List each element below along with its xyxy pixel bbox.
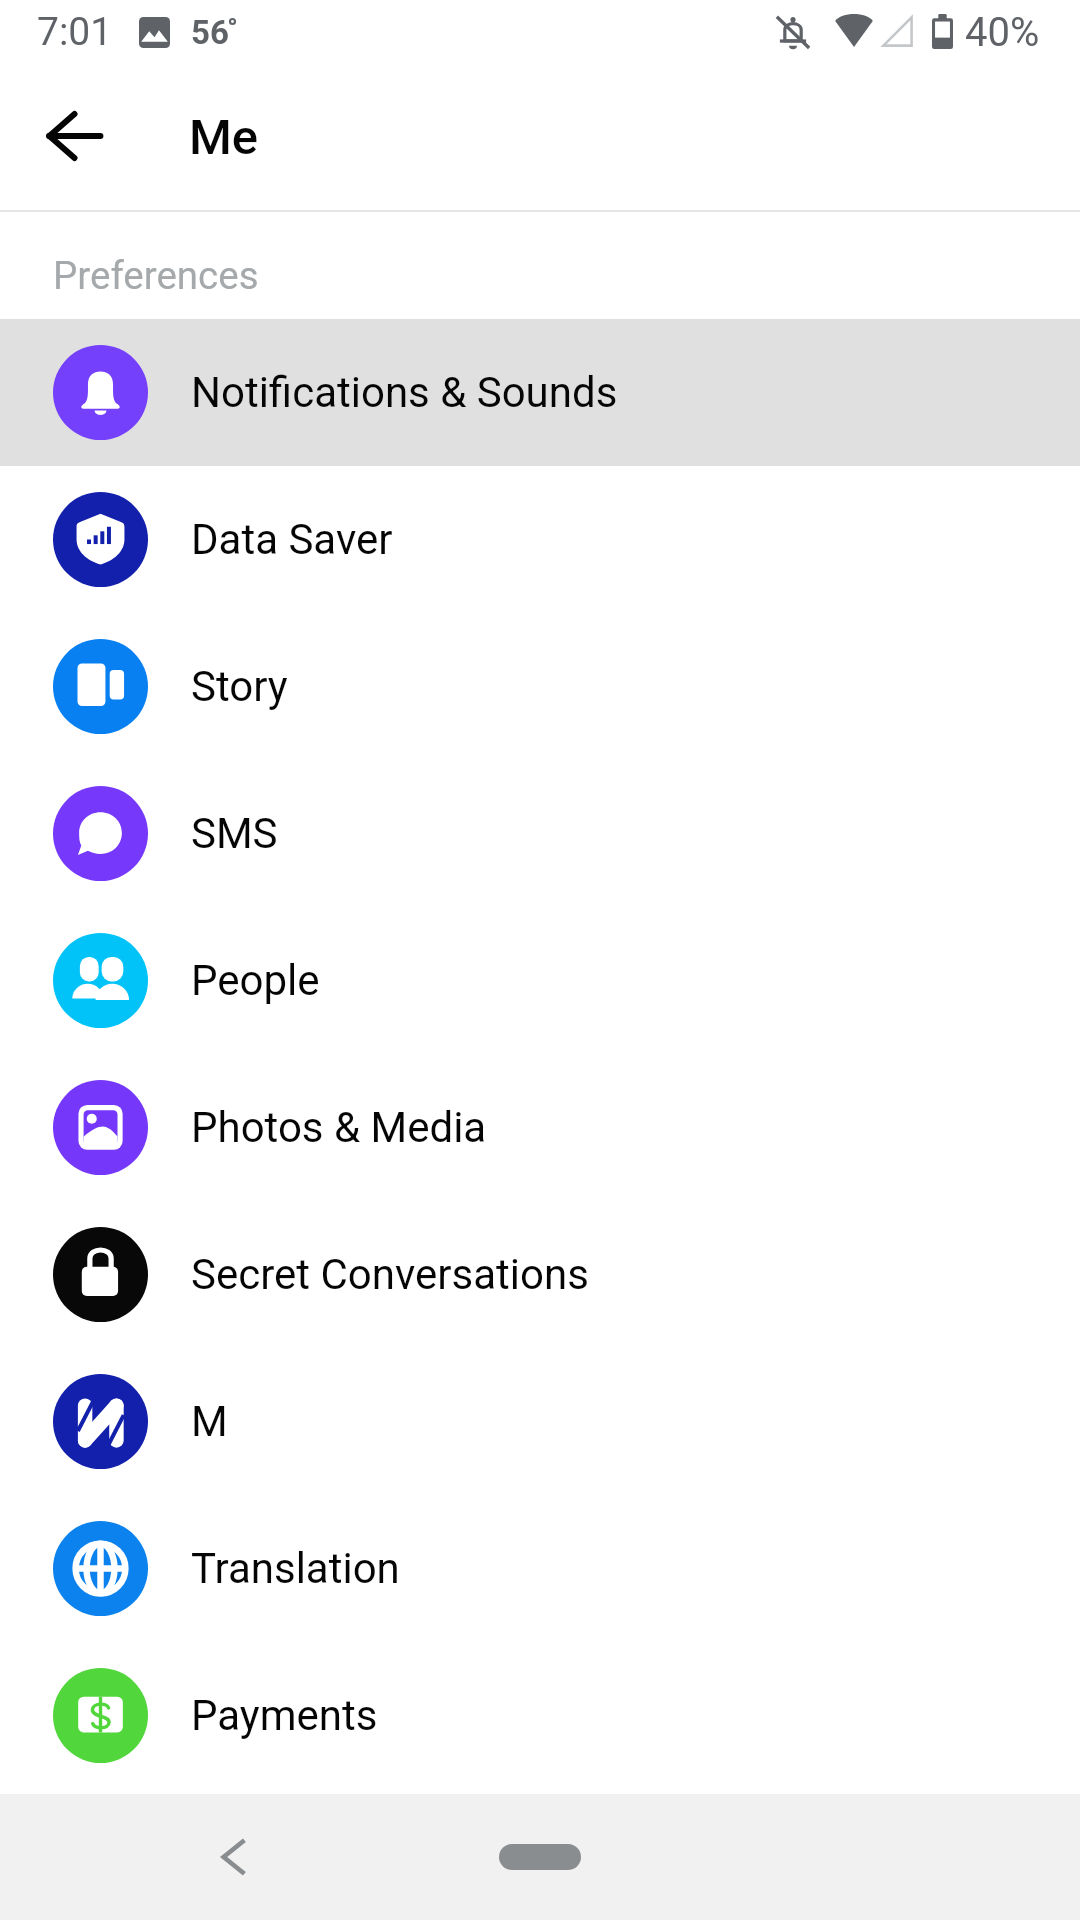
staticText: 7:01 — [37, 9, 113, 55]
staticText: Photos & Media — [191, 1103, 487, 1152]
staticText: SMS — [191, 809, 278, 858]
button[interactable]: Translation — [0, 1495, 1080, 1642]
button[interactable]: Story — [0, 613, 1080, 760]
button[interactable]: Data Saver — [0, 466, 1080, 613]
button[interactable]: Home — [499, 1844, 581, 1870]
staticText: Notifications & Sounds — [191, 368, 618, 417]
staticText: Me — [189, 109, 259, 166]
staticText: Preferences — [53, 253, 259, 298]
staticText: Data Saver — [191, 515, 393, 564]
button[interactable]: Secret Conversations — [0, 1201, 1080, 1348]
button[interactable]: Photos & Media — [0, 1054, 1080, 1201]
button[interactable]: Back — [192, 1815, 276, 1899]
button[interactable]: SMS — [0, 760, 1080, 907]
staticText: M — [191, 1397, 228, 1446]
staticText: 40% — [965, 9, 1040, 56]
button[interactable]: Back — [14, 81, 134, 201]
staticText: People — [191, 956, 320, 1005]
button[interactable]: M — [0, 1348, 1080, 1495]
staticText: Payments — [191, 1691, 378, 1740]
staticText: Secret Conversations — [191, 1250, 589, 1299]
staticText: 56 — [191, 13, 229, 52]
staticText: Translation — [191, 1544, 400, 1593]
staticText: Story — [191, 662, 288, 711]
button[interactable]: People — [0, 907, 1080, 1054]
button[interactable]: Notifications & Sounds — [0, 319, 1080, 466]
button[interactable]: Payments — [0, 1642, 1080, 1789]
